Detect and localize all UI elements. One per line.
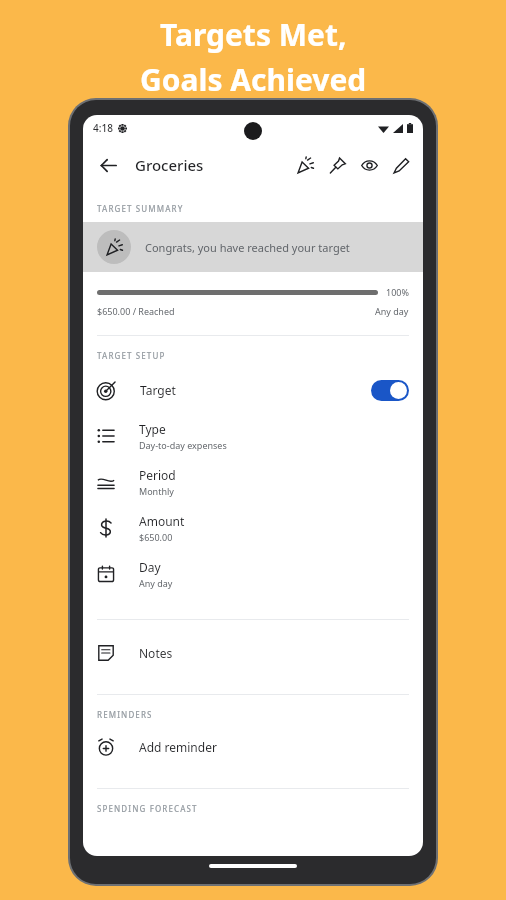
button[interactable]: Add reminder	[83, 724, 423, 770]
button[interactable]: Target	[83, 367, 423, 413]
staticText: SPENDING FORECAST	[97, 803, 198, 814]
button[interactable]: Amount	[83, 505, 423, 551]
staticText: $650.00	[139, 531, 173, 543]
button[interactable]: Day	[83, 551, 423, 597]
staticText: Monthly	[139, 485, 174, 497]
staticText: TARGET SETUP	[97, 350, 166, 361]
button[interactable]: Congrats, you have reached your target	[97, 222, 423, 272]
staticText: Day	[139, 559, 161, 575]
staticText: Notes	[139, 645, 173, 661]
staticText: REMINDERS	[97, 709, 153, 720]
button[interactable]: Preview	[353, 149, 385, 181]
button[interactable]: Type	[83, 413, 423, 459]
button[interactable]: Pin	[321, 149, 353, 181]
staticText: TARGET SUMMARY	[97, 203, 184, 214]
staticText: Any day	[139, 577, 173, 589]
staticText: Day-to-day expenses	[139, 439, 227, 451]
staticText: Congrats, you have reached your target	[145, 240, 350, 255]
staticText: Period	[139, 467, 176, 483]
staticText: Targets Met,	[160, 14, 347, 55]
staticText: Any day	[375, 305, 409, 317]
staticText: 4:18	[93, 121, 113, 135]
staticText: Groceries	[135, 155, 204, 175]
staticText: $650.00 / Reached	[97, 305, 175, 317]
staticText: Add reminder	[139, 739, 217, 755]
button[interactable]: Edit	[385, 149, 417, 181]
staticText: Type	[139, 421, 166, 437]
staticText: Target	[140, 382, 176, 398]
button[interactable]: Period	[83, 459, 423, 505]
staticText: Goals Achieved	[140, 59, 367, 100]
button[interactable]: Notes	[83, 630, 423, 676]
staticText: Amount	[139, 513, 185, 529]
button[interactable]: Back	[91, 148, 125, 182]
staticText: 100%	[386, 286, 409, 298]
button[interactable]: Celebrate	[289, 149, 321, 181]
